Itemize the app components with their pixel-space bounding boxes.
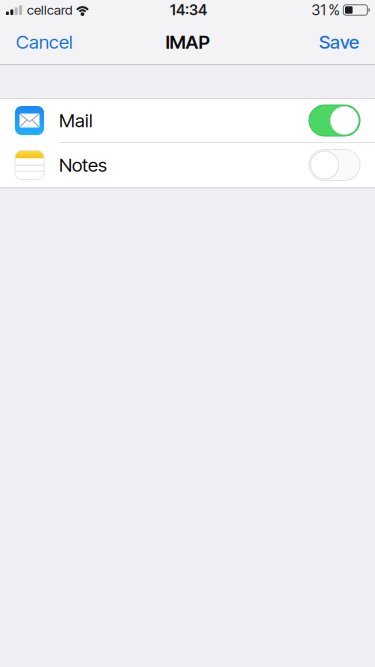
button[interactable]: Mail [0,99,375,143]
button[interactable]: Cancel [0,20,89,64]
staticText: Cancel [16,31,73,53]
staticText: 31 % [311,1,339,19]
button[interactable]: Notes [0,143,375,187]
staticText: Notes [59,154,107,176]
staticText: IMAP [165,31,209,53]
staticText: cellcard [27,2,72,18]
staticText: Save [319,31,359,53]
button[interactable]: Save [303,20,375,64]
staticText: 14:34 [170,1,207,19]
staticText: Mail [59,109,93,132]
